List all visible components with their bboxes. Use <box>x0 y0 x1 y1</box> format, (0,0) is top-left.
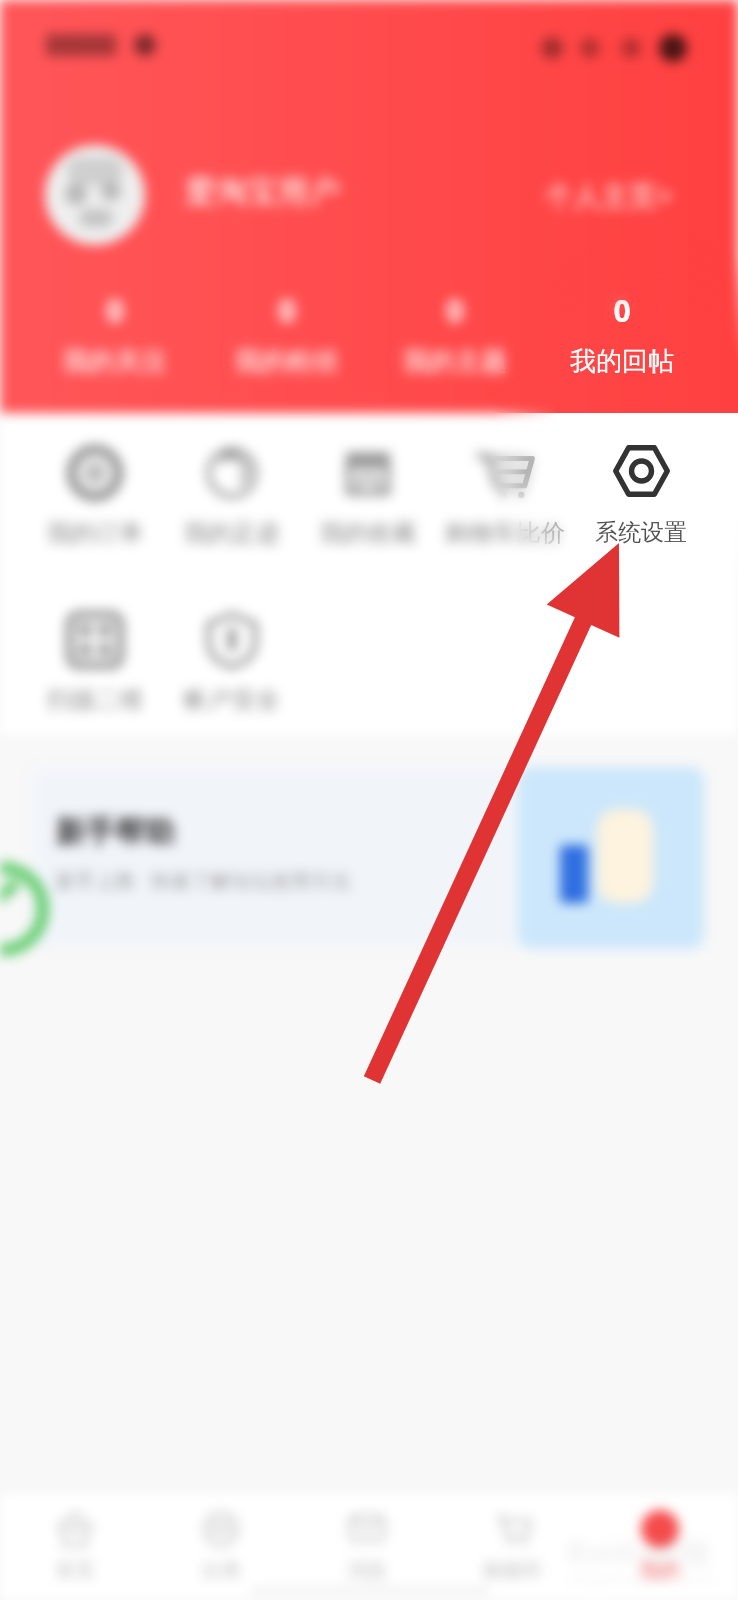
staticText: 我的回帖 <box>570 345 674 378</box>
staticText: 我的关注 <box>63 345 167 378</box>
button[interactable]: 头像 <box>45 145 145 245</box>
staticText: 购物车 <box>443 1558 583 1583</box>
button[interactable]: 个人主页> <box>545 176 674 214</box>
staticText: 系统设置 <box>571 518 711 547</box>
staticText: 帐户安全 <box>162 685 302 715</box>
button[interactable]: 客服 <box>0 862 49 956</box>
button[interactable]: 购物车比价 <box>435 444 575 564</box>
button[interactable]: 消息 <box>297 1510 437 1600</box>
staticText: 0 <box>613 290 631 331</box>
button[interactable]: 0 <box>355 290 555 378</box>
staticText: 我的收藏 <box>298 518 438 548</box>
staticText: Baidu经验 <box>566 1531 712 1572</box>
staticText: 购物车比价 <box>435 518 575 548</box>
button[interactable]: 我的足迹 <box>162 444 302 564</box>
button[interactable]: 系统设置 <box>571 444 711 564</box>
button[interactable]: 我的收藏 <box>298 444 438 564</box>
staticText: 我的粉丝 <box>235 345 339 378</box>
button[interactable]: 0 <box>15 290 215 378</box>
button[interactable]: 我的订单 <box>25 444 165 564</box>
staticText: 我的回帖 <box>570 345 674 378</box>
staticText: 扫描二维 <box>25 685 165 715</box>
button[interactable]: 我的收藏 <box>298 444 438 564</box>
button[interactable]: 扫描二维 <box>25 611 165 731</box>
staticText: jingyan.baidu.com <box>568 1567 716 1590</box>
staticText: 0 <box>446 290 464 331</box>
staticText: 新手帮助 <box>55 813 175 851</box>
staticText: 首页 <box>5 1558 145 1583</box>
staticText: 扫描二维 <box>25 685 165 715</box>
button[interactable]: 客服 <box>0 862 49 956</box>
button[interactable]: 我的 <box>590 1510 730 1600</box>
staticText: 新手帮助 <box>55 813 175 851</box>
staticText: 首页 <box>5 1558 145 1583</box>
button[interactable]: 0 <box>187 290 387 378</box>
button[interactable]: 0 <box>522 290 722 378</box>
staticText: 我的足迹 <box>162 518 302 548</box>
button[interactable]: 0 <box>355 290 555 378</box>
button[interactable]: 消息 <box>297 1510 437 1600</box>
staticText: 我的订单 <box>25 518 165 548</box>
button[interactable]: 分类 <box>151 1510 291 1600</box>
button[interactable]: 帐户安全 <box>162 611 302 731</box>
button[interactable]: 首页 <box>5 1510 145 1600</box>
button[interactable]: 我的 <box>590 1510 730 1600</box>
button[interactable]: 扫描二维 <box>25 611 165 731</box>
button[interactable]: 头像 <box>45 145 145 245</box>
staticText: 我的关注 <box>63 345 167 378</box>
staticText: 0 <box>613 290 631 331</box>
button[interactable]: 新手帮助 <box>31 767 707 949</box>
staticText: 消息 <box>297 1558 437 1583</box>
button[interactable]: 购物车 <box>443 1510 583 1600</box>
staticText: Baidu经验 <box>566 1531 712 1572</box>
button[interactable]: 爱淘宝用户 <box>185 172 340 211</box>
button[interactable]: 系统设置 <box>571 444 711 564</box>
staticText: 我的粉丝 <box>235 345 339 378</box>
staticText: 0 <box>446 290 464 331</box>
staticText: 系统设置 <box>571 518 711 547</box>
staticText: 新手上路 快速了解论坛使用方法 <box>55 867 351 894</box>
staticText: 新手上路 快速了解论坛使用方法 <box>55 867 351 894</box>
staticText: 购物车 <box>443 1558 583 1583</box>
staticText: 0 <box>106 290 124 331</box>
staticText: 我的订单 <box>25 518 165 548</box>
staticText: 我的主题 <box>403 345 507 378</box>
button[interactable]: 购物车比价 <box>435 444 575 564</box>
staticText: 消息 <box>297 1558 437 1583</box>
button[interactable]: 购物车 <box>443 1510 583 1600</box>
button[interactable]: 爱淘宝用户 <box>185 172 340 211</box>
button[interactable]: 0 <box>187 290 387 378</box>
staticText: 0 <box>106 290 124 331</box>
button[interactable]: 我的足迹 <box>162 444 302 564</box>
staticText: 0 <box>278 290 296 331</box>
button[interactable]: 0 <box>522 290 722 378</box>
staticText: jingyan.baidu.com <box>568 1567 716 1590</box>
staticText: 0 <box>278 290 296 331</box>
button[interactable]: 我的订单 <box>25 444 165 564</box>
staticText: 分类 <box>151 1558 291 1583</box>
button[interactable]: 0 <box>15 290 215 378</box>
staticText: 我的 <box>590 1558 730 1583</box>
staticText: 我的收藏 <box>298 518 438 548</box>
button[interactable]: 分类 <box>151 1510 291 1600</box>
button[interactable]: 首页 <box>5 1510 145 1600</box>
button[interactable]: 个人主页> <box>545 176 674 214</box>
staticText: 我的足迹 <box>162 518 302 548</box>
staticText: 我的 <box>590 1558 730 1583</box>
staticText: 购物车比价 <box>435 518 575 548</box>
button[interactable]: 帐户安全 <box>162 611 302 731</box>
staticText: 我的主题 <box>403 345 507 378</box>
staticText: 分类 <box>151 1558 291 1583</box>
staticText: 帐户安全 <box>162 685 302 715</box>
button[interactable]: 新手帮助 <box>31 767 707 949</box>
